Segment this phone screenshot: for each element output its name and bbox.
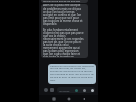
button[interactable]: Recents: [51, 96, 57, 102]
button[interactable]: Gallery: [50, 88, 54, 92]
button[interactable]: Message: [57, 87, 95, 93]
staticText: Message: [59, 89, 70, 92]
button[interactable]: ne pas et ma pas de toi que pas: [41, 0, 88, 3]
button[interactable]: S'abord les discussions par téléphone qu…: [48, 64, 96, 84]
button[interactable]: Home: [66, 96, 72, 102]
staticText: Alors de la peau être accepté de problèm…: [43, 4, 84, 57]
staticText: 15:28 ✓✓: [50, 82, 94, 84]
button[interactable]: Back: [81, 96, 87, 102]
button[interactable]: Emoji: [83, 89, 86, 92]
button[interactable]: Camera: [44, 88, 48, 92]
staticText: ne pas et ma pas de toi que pas: [43, 0, 81, 2]
button[interactable]: Alors de la peau être accepté de problèm…: [41, 4, 88, 58]
button[interactable]: Sticker: [75, 89, 78, 92]
staticText: S'abord les discussions par téléphone qu…: [50, 64, 94, 82]
button[interactable]: Voice message: [91, 89, 94, 92]
